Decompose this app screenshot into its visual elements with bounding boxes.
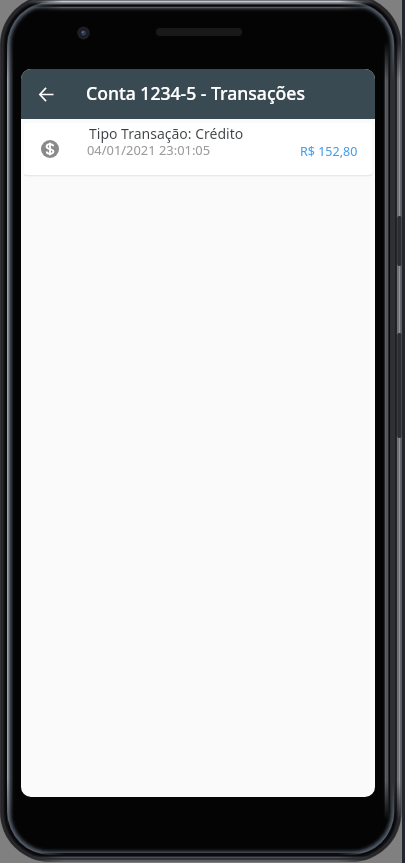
other: Front camera (75, 24, 93, 42)
button[interactable]: Back (26, 74, 66, 114)
staticText: Conta 1234-5 - Transações (86, 81, 305, 105)
staticText: R$ 152,80 (300, 143, 358, 160)
staticText: 04/01/2021 23:01:05 (87, 141, 211, 159)
staticText: Tipo Transação: Crédito (89, 124, 244, 143)
button[interactable]: Tipo Transação: Crédito (24, 123, 372, 175)
